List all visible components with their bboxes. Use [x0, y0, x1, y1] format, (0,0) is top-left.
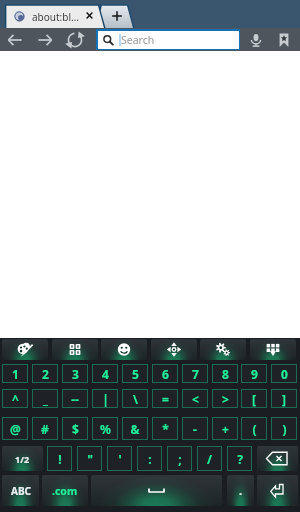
button[interactable]: < — [182, 389, 208, 408]
staticText: 9 — [251, 366, 258, 382]
button[interactable]: : — [137, 446, 162, 471]
button[interactable]: Back — [4, 29, 26, 51]
staticText: ' — [118, 451, 122, 467]
staticText: ( — [252, 421, 257, 437]
button[interactable]: @ — [2, 417, 28, 440]
staticText: ^ — [12, 391, 19, 407]
button[interactable]: Close tab — [83, 9, 96, 22]
staticText: @ — [10, 421, 21, 437]
staticText: | — [102, 391, 109, 407]
button[interactable]: ( — [241, 417, 267, 440]
staticText: = — [162, 391, 169, 407]
staticText: Search — [121, 33, 155, 47]
button[interactable]: = — [152, 389, 178, 408]
button[interactable]: ; — [167, 446, 192, 471]
button[interactable]: 7 — [182, 364, 208, 383]
button[interactable]: \ — [122, 389, 148, 408]
button[interactable]: 6 — [152, 364, 178, 383]
staticText: about:bl… — [32, 10, 79, 24]
staticText: ? — [237, 451, 243, 467]
staticText: # — [41, 421, 49, 437]
button[interactable]: ! — [47, 446, 72, 471]
button[interactable]: ABC — [2, 475, 39, 506]
button[interactable]: Search — [96, 29, 240, 50]
button[interactable]: Hide keyboard — [250, 339, 296, 360]
button[interactable]: Reload — [64, 29, 86, 51]
button[interactable]: Bookmarks — [274, 30, 294, 50]
button[interactable]: .com — [42, 475, 88, 506]
button[interactable]: Theme — [2, 339, 48, 360]
button[interactable]: 9 — [241, 364, 267, 383]
button[interactable]: 4 — [92, 364, 118, 383]
button[interactable]: _ — [32, 389, 58, 408]
staticText: 4 — [102, 366, 109, 382]
staticText: ] — [282, 391, 286, 407]
staticText: -- — [71, 391, 79, 407]
button[interactable]: | — [92, 389, 118, 408]
staticText: % — [100, 421, 111, 437]
button[interactable]: 0 — [271, 364, 297, 383]
staticText: 1 — [12, 366, 19, 382]
button[interactable]: -- — [62, 389, 88, 408]
button[interactable]: Backspace — [257, 446, 298, 471]
staticText: : — [148, 451, 152, 467]
staticText: 0 — [281, 366, 288, 382]
button[interactable]: 1/2 — [2, 446, 43, 471]
button[interactable]: $ — [62, 417, 88, 440]
button[interactable]: - — [182, 417, 208, 440]
staticText: & — [130, 421, 140, 437]
staticText: 1/2 — [15, 453, 30, 465]
button[interactable]: 3 — [62, 364, 88, 383]
staticText: ) — [282, 421, 287, 437]
button[interactable]: New tab — [109, 8, 125, 24]
button[interactable]: % — [92, 417, 118, 440]
button[interactable]: * — [152, 417, 178, 440]
button[interactable]: 2 — [32, 364, 58, 383]
button[interactable]: Move keyboard — [151, 339, 197, 360]
staticText: 2 — [42, 366, 49, 382]
staticText: - — [193, 421, 197, 437]
button[interactable]: Space — [91, 475, 222, 506]
button[interactable]: 5 — [122, 364, 148, 383]
staticText: > — [222, 391, 229, 407]
staticText: + — [222, 421, 229, 437]
button[interactable]: Voice search — [246, 30, 266, 50]
button[interactable]: ' — [107, 446, 132, 471]
staticText: 6 — [162, 366, 169, 382]
button[interactable]: ] — [271, 389, 297, 408]
staticText: " — [87, 451, 93, 467]
button[interactable]: / — [197, 446, 222, 471]
staticText: 8 — [222, 366, 229, 382]
button[interactable]: 8 — [212, 364, 238, 383]
staticText: 3 — [72, 366, 79, 382]
button[interactable]: 1 — [2, 364, 28, 383]
button[interactable]: & — [122, 417, 148, 440]
staticText: < — [192, 391, 199, 407]
button[interactable]: . — [227, 475, 254, 506]
button[interactable]: + — [212, 417, 238, 440]
button[interactable]: Enter — [257, 475, 298, 506]
staticText: $ — [72, 421, 79, 437]
button[interactable]: [ — [241, 389, 267, 408]
staticText: 7 — [192, 366, 199, 382]
button[interactable]: Settings — [200, 339, 246, 360]
button[interactable]: > — [212, 389, 238, 408]
staticText: / — [207, 451, 212, 467]
staticText: .com — [52, 484, 78, 498]
button[interactable]: ? — [227, 446, 252, 471]
staticText: [ — [252, 391, 256, 407]
button[interactable]: Forward — [34, 29, 56, 51]
button[interactable]: Emoji — [101, 339, 147, 360]
staticText: * — [162, 421, 169, 437]
button[interactable]: Clipboard — [52, 339, 98, 360]
button[interactable]: ) — [271, 417, 297, 440]
staticText: ! — [58, 451, 62, 467]
button[interactable]: about:bl… — [5, 5, 100, 28]
button[interactable]: ^ — [2, 389, 28, 408]
button[interactable]: # — [32, 417, 58, 440]
button[interactable]: " — [77, 446, 102, 471]
staticText: 5 — [132, 366, 139, 382]
staticText: ABC — [11, 484, 31, 498]
staticText: \ — [133, 391, 138, 407]
staticText: ; — [178, 451, 182, 467]
